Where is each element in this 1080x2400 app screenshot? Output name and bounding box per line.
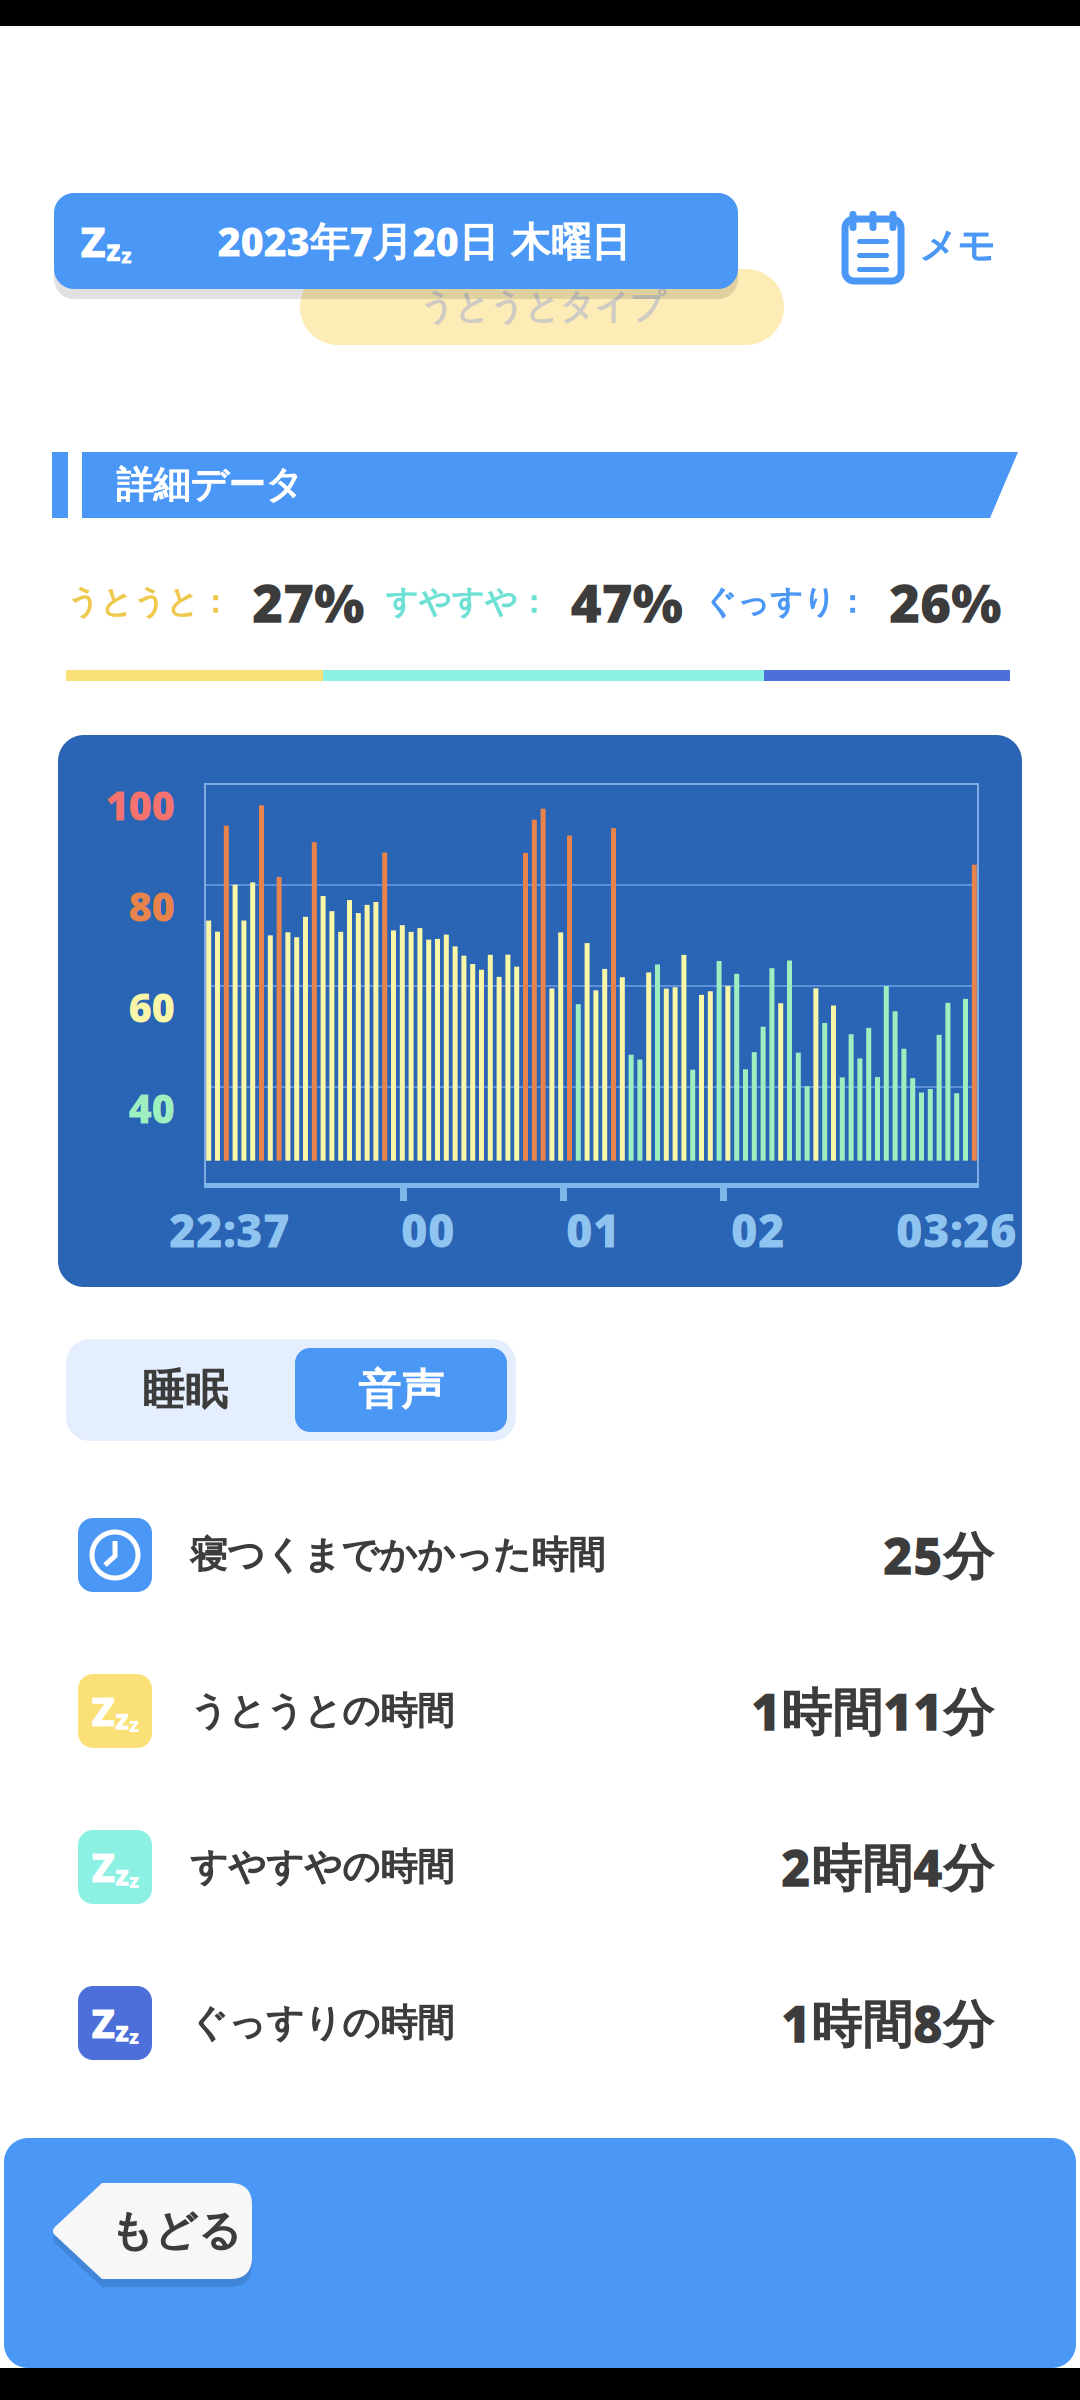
staticText: z bbox=[121, 241, 132, 269]
staticText: ぐっすり： bbox=[704, 582, 868, 622]
button[interactable]: 音声 bbox=[295, 1348, 507, 1432]
staticText: z bbox=[129, 1867, 139, 1894]
staticText: 1時間8分 bbox=[781, 1989, 994, 2057]
staticText: 音声 bbox=[358, 1364, 444, 1416]
staticText: z bbox=[106, 230, 121, 269]
staticText: 27% bbox=[252, 567, 365, 637]
staticText: Z bbox=[91, 1996, 115, 2049]
button[interactable]: Z bbox=[0, 1633, 1080, 1789]
button[interactable]: もどる bbox=[48, 2183, 278, 2287]
staticText: 02 bbox=[731, 1200, 785, 1260]
staticText: うとうと： bbox=[67, 582, 231, 622]
button[interactable]: 睡眠 bbox=[75, 1348, 295, 1432]
staticText: 60 bbox=[128, 980, 174, 1033]
staticText: メモ bbox=[919, 223, 995, 269]
staticText: 22:37 bbox=[169, 1200, 290, 1260]
staticText: 1時間11分 bbox=[751, 1677, 994, 1745]
button[interactable]: Z bbox=[0, 1789, 1080, 1945]
staticText: 80 bbox=[128, 879, 174, 932]
staticText: 03:26 bbox=[896, 1200, 1017, 1260]
staticText: 47% bbox=[570, 567, 683, 637]
staticText: 睡眠 bbox=[142, 1364, 228, 1416]
staticText: ぐっすりの時間 bbox=[190, 2000, 454, 2046]
staticText: z bbox=[115, 1856, 129, 1894]
staticText: 00 bbox=[401, 1200, 455, 1260]
staticText: もどる bbox=[110, 2205, 242, 2257]
staticText: 2時間4分 bbox=[781, 1833, 994, 1901]
staticText: すやすやの時間 bbox=[190, 1844, 454, 1890]
staticText: z bbox=[129, 1711, 139, 1738]
staticText: すやすや： bbox=[385, 582, 549, 622]
staticText: z bbox=[129, 2023, 139, 2050]
staticText: Z bbox=[91, 1840, 115, 1893]
staticText: 寝つくまでかかった時間 bbox=[190, 1532, 605, 1578]
staticText: 100 bbox=[105, 778, 174, 831]
button[interactable]: Z bbox=[0, 1945, 1080, 2101]
staticText: うとうとの時間 bbox=[190, 1688, 454, 1734]
staticText: z bbox=[115, 1700, 129, 1738]
button[interactable]: メモ bbox=[834, 206, 1004, 286]
staticText: z bbox=[115, 2012, 129, 2050]
staticText: Z bbox=[80, 213, 106, 269]
button[interactable]: 寝つくまでかかった時間 bbox=[0, 1477, 1080, 1633]
button[interactable]: Z bbox=[54, 193, 738, 299]
staticText: 25分 bbox=[883, 1521, 994, 1589]
staticText: うとうとタイプ bbox=[419, 286, 664, 328]
staticText: Z bbox=[91, 1684, 115, 1737]
staticText: 01 bbox=[566, 1200, 620, 1260]
staticText: 40 bbox=[128, 1081, 174, 1134]
staticText: 2023年7月20日 木曜日 bbox=[217, 214, 630, 267]
staticText: 26% bbox=[889, 567, 1002, 637]
staticText: 詳細データ bbox=[116, 462, 303, 508]
